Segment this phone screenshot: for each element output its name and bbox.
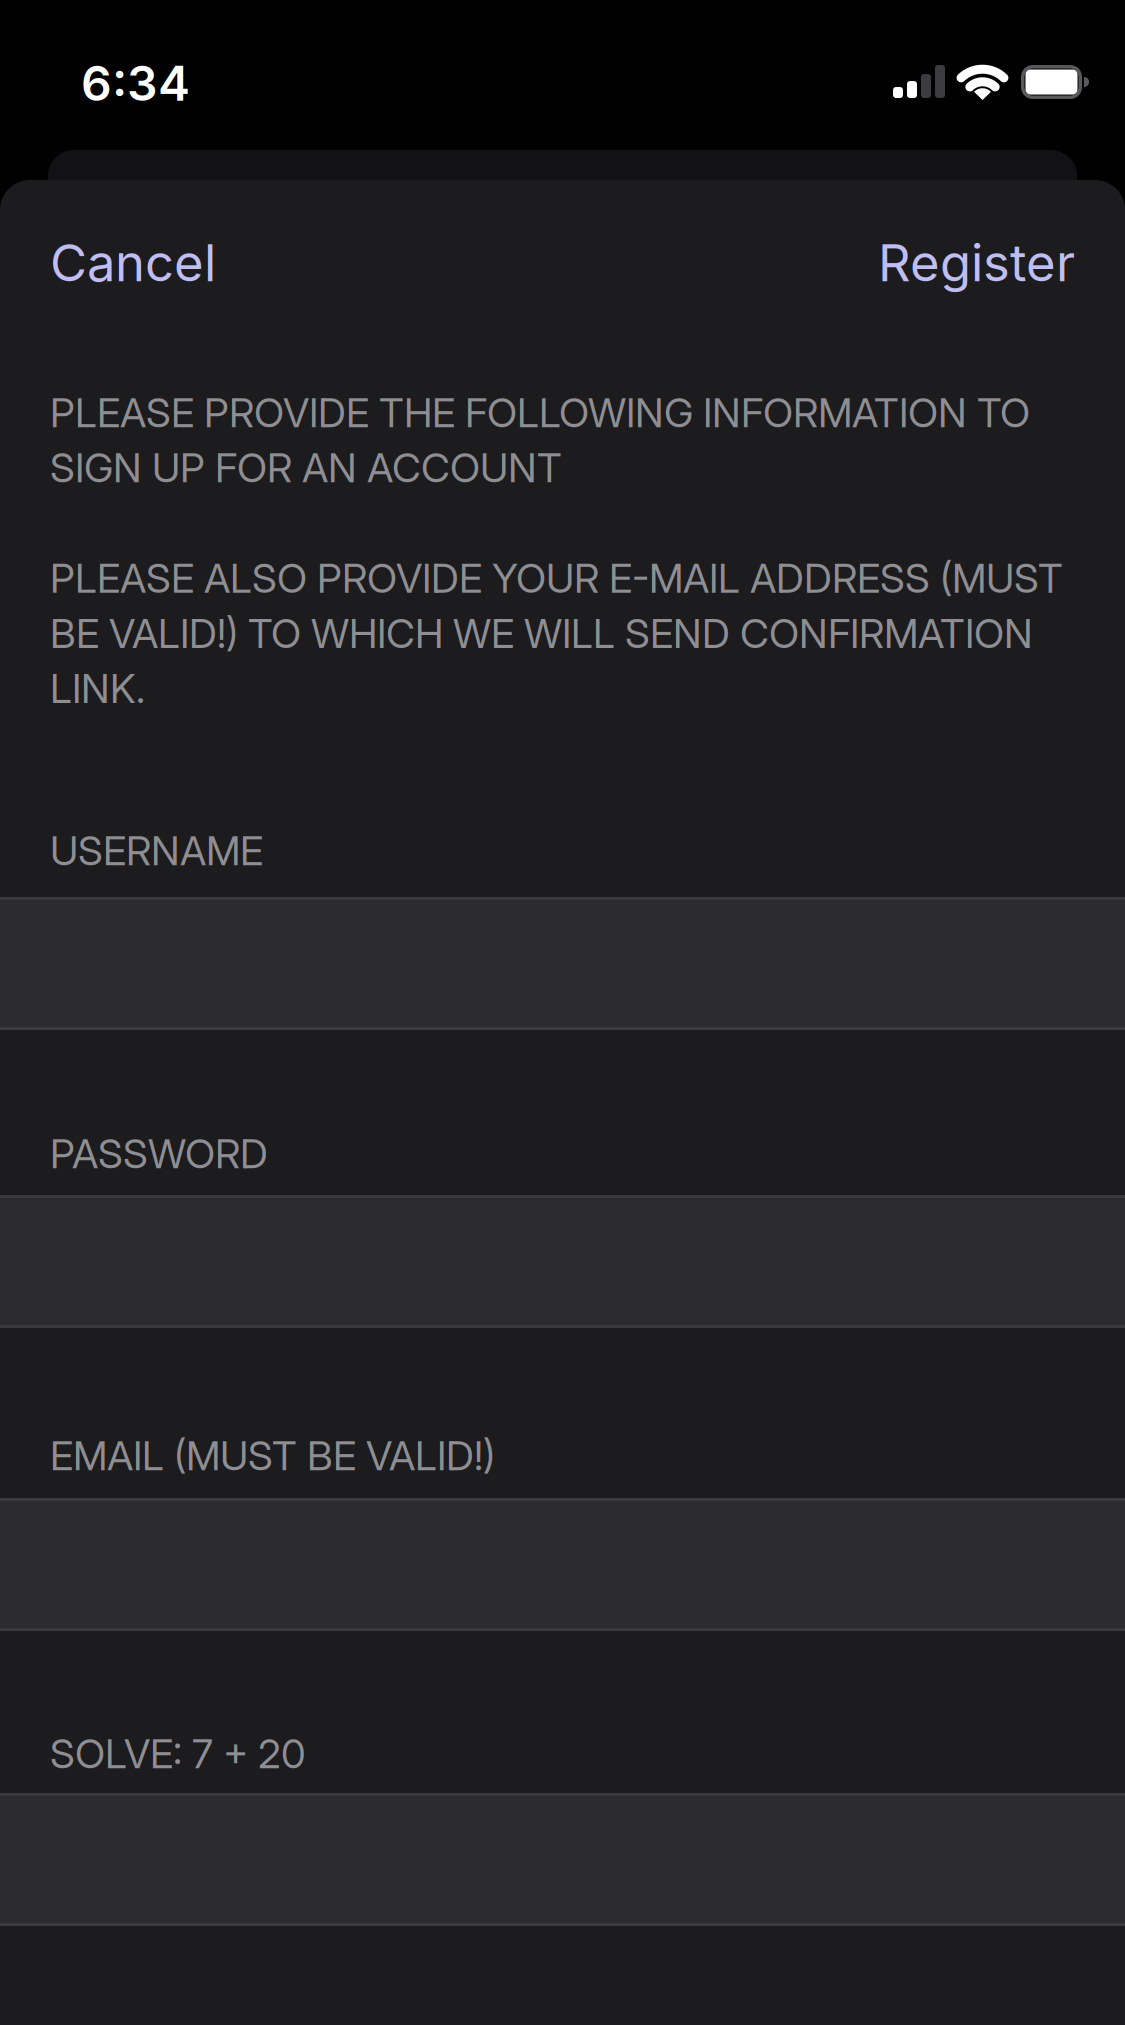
staticText: PLEASE PROVIDE THE FOLLOWING INFORMATION… bbox=[50, 389, 1063, 712]
staticText: Register bbox=[878, 233, 1075, 293]
button[interactable]: Register bbox=[878, 233, 1075, 293]
button[interactable]: Cancel bbox=[50, 233, 216, 293]
staticText: USERNAME bbox=[50, 827, 263, 874]
staticText: EMAIL (MUST BE VALID!) bbox=[50, 1432, 495, 1479]
staticText: 6:34 bbox=[81, 55, 190, 112]
staticText: SOLVE: 7 + 20 bbox=[50, 1730, 306, 1777]
staticText: Cancel bbox=[50, 233, 216, 293]
staticText: PASSWORD bbox=[50, 1130, 268, 1177]
